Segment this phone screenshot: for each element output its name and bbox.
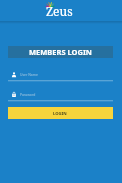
button[interactable]: User	[8, 69, 113, 79]
staticText: MEMBERS LOGIN	[29, 47, 92, 57]
button[interactable]: LOGIN	[8, 107, 113, 119]
staticText: LOGIN	[53, 111, 67, 117]
staticText: User Name	[20, 72, 38, 77]
button[interactable]: Zeus home	[0, 0, 122, 21]
button[interactable]: Password	[8, 89, 113, 99]
other: User	[12, 72, 16, 77]
staticText: Password	[20, 92, 36, 97]
staticText: Zeus	[46, 3, 73, 19]
other: Password	[12, 92, 16, 97]
